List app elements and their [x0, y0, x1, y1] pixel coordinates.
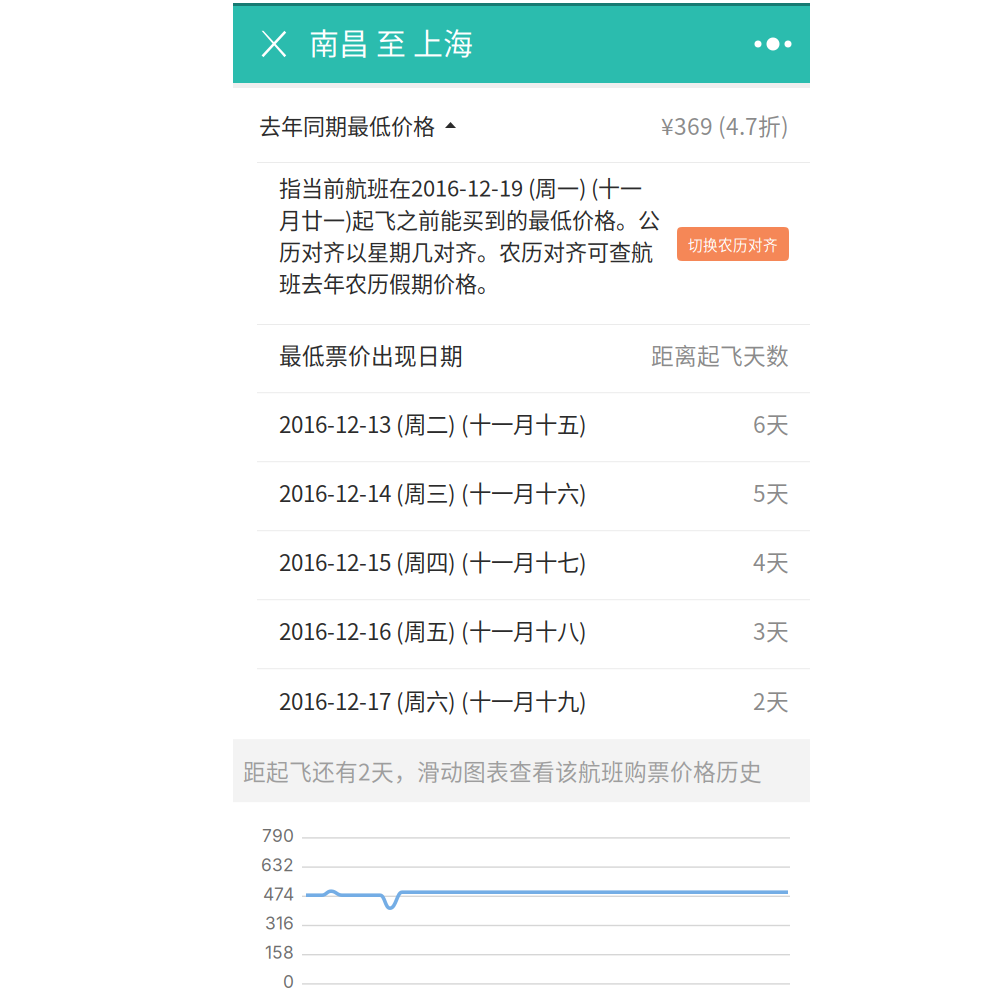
button[interactable]: 更多 More options — [744, 0, 802, 83]
staticText: 4天 — [753, 545, 789, 578]
staticText: ¥369 (4.7折) — [661, 109, 789, 141]
staticText: 0 — [283, 971, 294, 992]
staticText: 指当前航班在2016-12-19 (周一) (十一 月廿一)起飞之前能买到的最低… — [279, 171, 660, 298]
button[interactable]: 去年同期最低价格 — [233, 88, 810, 162]
staticText: 316 — [265, 913, 294, 934]
staticText: 790 — [262, 825, 294, 846]
button[interactable]: 2016-12-15 (周四) (十一月十七) — [233, 531, 810, 599]
button[interactable]: 2016-12-16 (周五) (十一月十八) — [233, 600, 810, 668]
staticText: 5天 — [753, 476, 789, 509]
button[interactable]: 最低票价出现日期 — [233, 325, 810, 392]
staticText: 距起飞还有2天，滑动图表查看该航班购票价格历史 — [243, 754, 762, 787]
staticText: 南昌 至 上海 — [309, 20, 473, 63]
button[interactable]: 切换农历对齐 — [677, 227, 789, 261]
staticText: 去年同期最低价格 — [259, 109, 435, 141]
staticText: 3天 — [753, 614, 789, 647]
staticText: 距离起飞天数 — [651, 338, 789, 371]
staticText: 474 — [263, 884, 294, 905]
button[interactable]: 2016-12-17 (周六) (十一月十九) — [233, 669, 810, 739]
staticText: 632 — [261, 854, 294, 875]
staticText: 2天 — [753, 684, 789, 717]
staticText: 2016-12-14 (周三) (十一月十六) — [279, 476, 587, 508]
staticText: 2016-12-16 (周五) (十一月十八) — [279, 614, 587, 646]
staticText: 最低票价出现日期 — [279, 338, 463, 371]
staticText: 2016-12-13 (周二) (十一月十五) — [279, 407, 587, 439]
button[interactable]: 2016-12-14 (周三) (十一月十六) — [233, 462, 810, 530]
button[interactable]: 2016-12-13 (周二) (十一月十五) — [233, 393, 810, 461]
staticText: 158 — [265, 942, 294, 963]
staticText: 切换农历对齐 — [688, 233, 778, 255]
staticText: 2016-12-17 (周六) (十一月十九) — [279, 684, 587, 716]
button[interactable]: 关闭 Close — [238, 0, 309, 83]
staticText: 6天 — [753, 407, 789, 440]
staticText: 2016-12-15 (周四) (十一月十七) — [279, 545, 587, 577]
